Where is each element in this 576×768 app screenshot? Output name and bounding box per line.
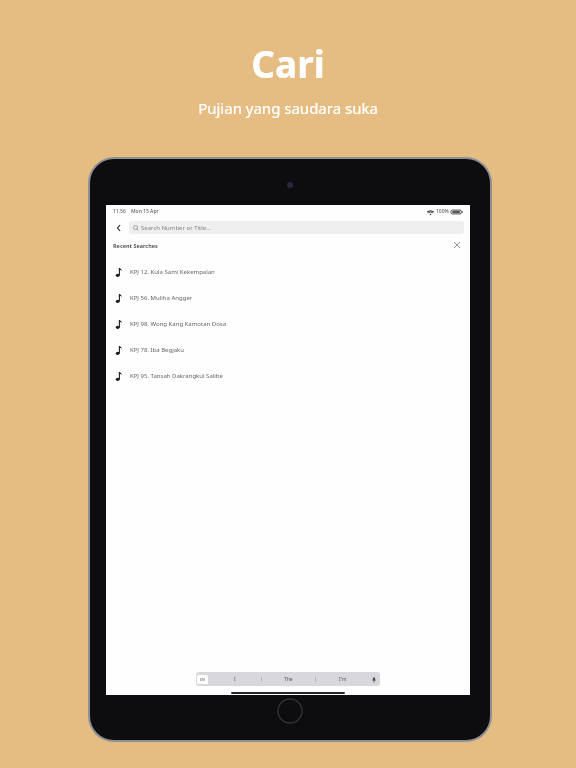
staticText: Mon 15 Apr bbox=[131, 208, 159, 215]
staticText: KPJ 12. Kula Sami Kekempalan bbox=[130, 268, 215, 276]
button[interactable]: I'm bbox=[316, 672, 369, 686]
button[interactable]: Language EN bbox=[197, 675, 208, 684]
button[interactable]: KPJ 95. Tansah Dakrangkul Salibe bbox=[106, 363, 470, 389]
staticText: 11.56 bbox=[113, 208, 126, 215]
button[interactable]: Search Number or Title… bbox=[129, 221, 464, 234]
staticText: KPJ 95. Tansah Dakrangkul Salibe bbox=[130, 372, 223, 380]
staticText: Cari bbox=[251, 38, 325, 88]
button[interactable]: Clear recent searches bbox=[451, 239, 463, 251]
button[interactable]: Back bbox=[112, 221, 126, 235]
staticText: Pujian yang saudara suka bbox=[198, 98, 378, 118]
button[interactable]: KPJ 56. Muliha Angger bbox=[106, 285, 470, 311]
other: Home bbox=[277, 698, 303, 724]
button[interactable]: Voice input bbox=[369, 675, 378, 684]
staticText: I bbox=[234, 676, 236, 683]
button[interactable]: KPJ 98. Wong Kang Kamotan Dosa bbox=[106, 311, 470, 337]
button[interactable]: KPJ 12. Kula Sami Kekempalan bbox=[106, 259, 470, 285]
staticText: 100% bbox=[436, 208, 449, 215]
staticText: KPJ 56. Muliha Angger bbox=[130, 294, 193, 302]
button[interactable]: I bbox=[209, 672, 261, 686]
staticText: Recent Searches bbox=[113, 242, 158, 249]
staticText: I'm bbox=[339, 676, 347, 683]
button[interactable]: The bbox=[262, 672, 315, 686]
staticText: KPJ 98. Wong Kang Kamotan Dosa bbox=[130, 320, 227, 328]
staticText: The bbox=[284, 676, 293, 683]
staticText: EN bbox=[200, 677, 205, 682]
button[interactable]: KPJ 78. Iba Begjaku bbox=[106, 337, 470, 363]
staticText: Search Number or Title… bbox=[141, 224, 211, 232]
staticText: KPJ 78. Iba Begjaku bbox=[130, 346, 185, 354]
